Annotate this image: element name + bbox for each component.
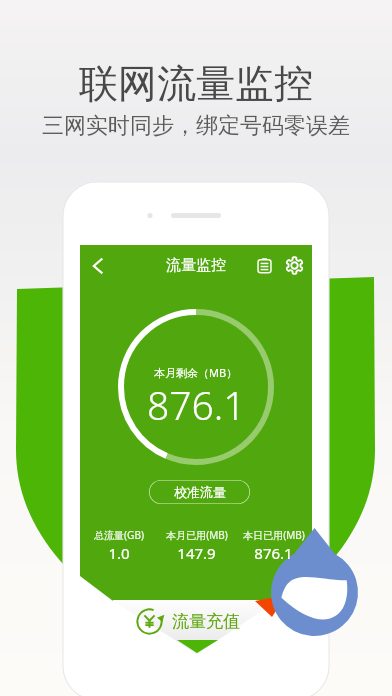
staticText: 三网实时同步，绑定号码零误差: [42, 112, 350, 140]
staticText: 联网流量监控: [79, 59, 313, 108]
button[interactable]: Back: [81, 249, 114, 282]
staticText: 总流量(GB): [94, 528, 144, 542]
button[interactable]: Records: [248, 249, 281, 282]
staticText: 本月已用(MB): [166, 528, 228, 542]
button[interactable]: Settings: [278, 249, 311, 282]
staticText: 流量充值: [172, 611, 240, 632]
staticText: 876.1: [147, 378, 246, 431]
staticText: 本月剩余（MB）: [154, 365, 238, 380]
staticText: 147.9: [177, 543, 216, 563]
staticText: 流量监控: [166, 256, 226, 275]
staticText: 校准流量: [174, 484, 226, 500]
button[interactable]: 校准流量: [149, 480, 250, 504]
button[interactable]: 流量充值: [136, 606, 240, 636]
staticText: 876.1: [254, 543, 293, 563]
staticText: 1.0: [108, 543, 130, 563]
staticText: 本日已用(MB): [243, 528, 305, 542]
